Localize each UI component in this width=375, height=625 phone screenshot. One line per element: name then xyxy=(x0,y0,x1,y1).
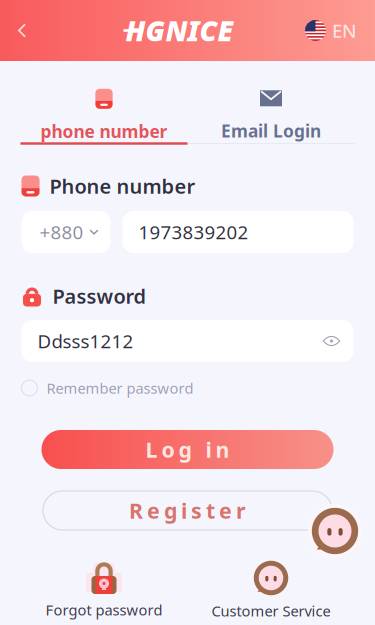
staticText: 1973839202 xyxy=(138,220,248,244)
button[interactable]: Forgot password xyxy=(20,561,187,625)
button[interactable]: Customer Service xyxy=(187,561,354,625)
button[interactable]: phone number xyxy=(20,61,187,142)
button[interactable]: Email Login xyxy=(187,61,354,142)
button[interactable]: Country code +880 xyxy=(21,211,110,253)
staticText: Customer Service xyxy=(211,601,330,620)
button[interactable]: Remember password xyxy=(21,376,353,400)
button[interactable]: L o g i n xyxy=(41,430,333,469)
staticText: HGNICE xyxy=(125,12,233,49)
staticText: Ddsss1212 xyxy=(37,329,133,353)
button[interactable]: Back xyxy=(0,0,62,61)
staticText: Email Login xyxy=(221,119,321,142)
button[interactable]: Change language, English xyxy=(297,0,375,61)
button[interactable]: R e g i s t e r xyxy=(43,491,332,530)
staticText: R e g i s t e r xyxy=(129,496,246,525)
staticText: L o g i n xyxy=(145,435,229,464)
staticText: phone number xyxy=(40,120,167,143)
staticText: Forgot password xyxy=(45,600,162,619)
button[interactable]: Show password xyxy=(317,328,345,354)
staticText: EN xyxy=(332,18,356,43)
button[interactable]: Customer service chat xyxy=(308,504,362,558)
staticText: Remember password xyxy=(46,378,193,398)
staticText: +880 xyxy=(39,220,83,244)
staticText: Phone number xyxy=(50,173,196,199)
staticText: Password xyxy=(52,283,146,309)
